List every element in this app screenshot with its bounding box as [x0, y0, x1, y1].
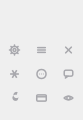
button[interactable]: Sleep: [1, 86, 28, 110]
button[interactable]: Settings: [1, 38, 28, 62]
button[interactable]: Effects: [1, 62, 28, 86]
button[interactable]: Messages: [55, 62, 82, 86]
button[interactable]: Preview: [55, 86, 82, 110]
button[interactable]: Wallet: [28, 86, 55, 110]
button[interactable]: More: [28, 62, 55, 86]
button[interactable]: Menu: [28, 38, 55, 62]
button[interactable]: Close: [55, 38, 82, 62]
